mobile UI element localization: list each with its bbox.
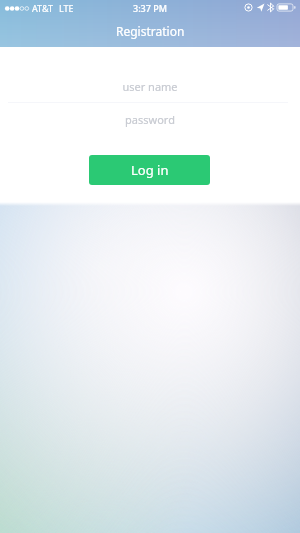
button[interactable]: Log in — [89, 155, 210, 185]
staticText: Registration — [116, 23, 185, 39]
button[interactable]: user name — [0, 73, 300, 99]
staticText: 3:37 PM — [133, 2, 167, 14]
staticText: Log in — [131, 161, 169, 179]
button[interactable]: password — [0, 106, 300, 132]
staticText: password — [125, 112, 175, 127]
staticText: AT&T — [32, 2, 53, 14]
staticText: LTE — [59, 2, 74, 14]
staticText: user name — [122, 79, 178, 94]
